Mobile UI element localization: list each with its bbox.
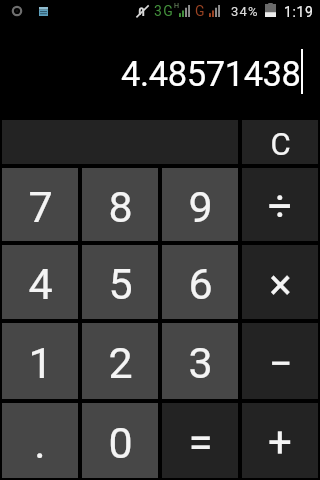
staticText: 8 (108, 182, 133, 232)
button[interactable]: 7 (2, 168, 78, 241)
button[interactable]: 6 (162, 245, 238, 319)
staticText: 1 (28, 338, 53, 388)
staticText: ÷ (268, 182, 292, 231)
staticText: 6 (188, 259, 213, 309)
button[interactable]: Divide (242, 168, 318, 241)
staticText: 4 (28, 259, 53, 309)
staticText: H (174, 2, 179, 10)
button[interactable]: 5 (82, 245, 158, 319)
staticText: G (195, 3, 205, 19)
staticText: C (270, 126, 291, 162)
staticText: 7 (28, 182, 53, 232)
button[interactable]: 3 (162, 323, 238, 399)
staticText: 5 (108, 259, 133, 309)
button[interactable]: 0 (82, 403, 158, 478)
button[interactable]: 9 (162, 168, 238, 241)
staticText: 34% (231, 4, 259, 19)
staticText: 0 (108, 418, 133, 468)
button[interactable]: Add (242, 403, 318, 478)
staticText: 3 (188, 338, 213, 388)
staticText: + (268, 418, 292, 467)
staticText: 3G (154, 3, 175, 19)
staticText: 2 (108, 338, 133, 388)
button[interactable]: Equals (162, 403, 238, 478)
button[interactable]: 4 (2, 245, 78, 319)
staticText: 4.48571438 (121, 54, 301, 94)
button[interactable]: Multiply (242, 245, 318, 319)
staticText: 9 (188, 182, 213, 232)
staticText: × (269, 260, 292, 309)
button[interactable]: Decimal point (2, 403, 78, 478)
staticText: − (268, 339, 293, 388)
button[interactable]: 2 (82, 323, 158, 399)
button[interactable]: Clear (242, 120, 318, 164)
staticText: 1:19 (284, 4, 314, 20)
button[interactable]: Subtract (242, 323, 318, 399)
button[interactable]: 8 (82, 168, 158, 241)
staticText: . (34, 418, 46, 468)
button[interactable]: 1 (2, 323, 78, 399)
staticText: = (188, 417, 213, 469)
